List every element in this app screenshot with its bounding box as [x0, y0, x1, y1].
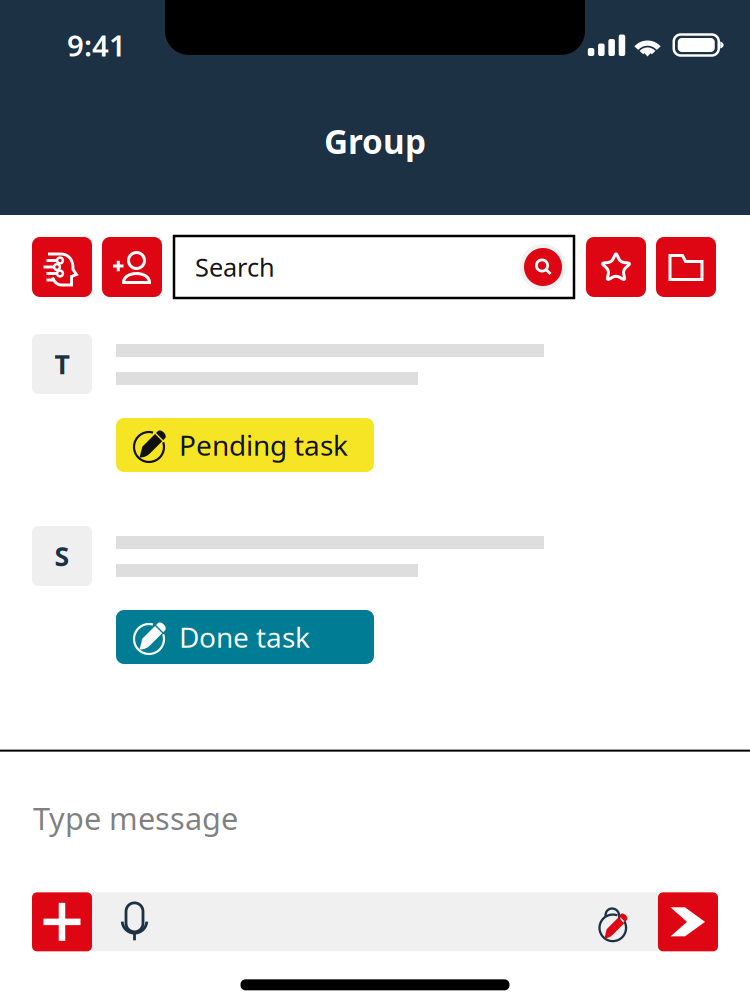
button[interactable]: Scheduled message — [574, 892, 658, 951]
button[interactable]: Send — [658, 892, 718, 951]
button[interactable]: AI assistant — [32, 237, 92, 297]
staticText: Pending task — [179, 426, 348, 464]
staticText: Type message — [33, 798, 238, 838]
staticText: S — [54, 538, 69, 574]
staticText: Group — [324, 119, 426, 163]
button[interactable]: Done task — [116, 610, 374, 664]
staticText: T — [54, 346, 69, 382]
staticText: Search — [195, 250, 275, 284]
staticText: Done task — [179, 618, 310, 656]
button[interactable]: Favorites — [586, 237, 646, 297]
button[interactable]: Search — [174, 236, 574, 298]
staticText: 9:41 — [67, 25, 126, 64]
button[interactable]: Voice message — [92, 892, 177, 951]
button[interactable]: Add person — [102, 237, 162, 297]
button[interactable]: Pending task — [116, 418, 374, 472]
button[interactable]: Add attachment — [32, 892, 92, 951]
button[interactable]: Folders — [656, 237, 716, 297]
